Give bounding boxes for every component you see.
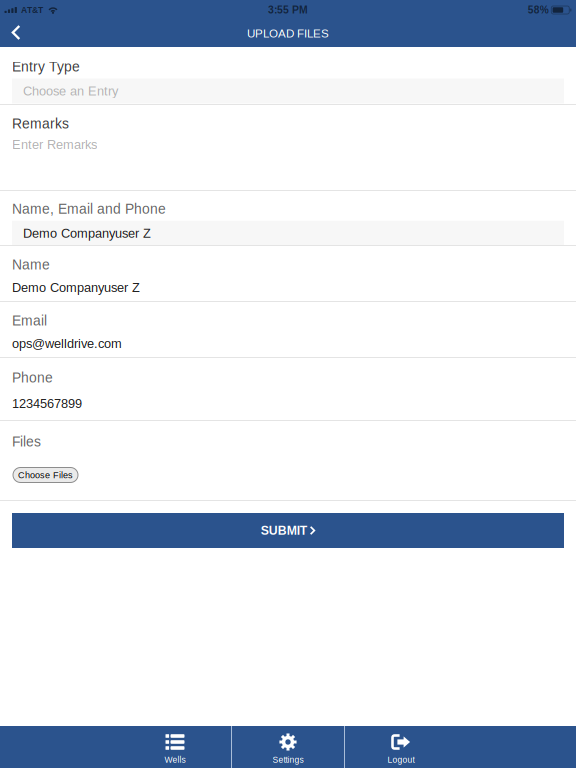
staticText: 3:55 PM <box>268 4 308 16</box>
button[interactable]: Choose an Entry <box>12 78 564 103</box>
staticText: SUBMIT <box>261 524 307 537</box>
staticText: Logout <box>387 755 414 764</box>
staticText: Demo Companyuser Z <box>12 280 140 295</box>
staticText: Email <box>12 313 47 328</box>
button[interactable]: Wells <box>119 726 231 768</box>
staticText: 1234567899 <box>12 396 82 411</box>
button[interactable]: Demo Companyuser Z <box>12 221 564 246</box>
staticText: 58% <box>528 4 549 16</box>
button[interactable]: Choose Files <box>13 467 78 482</box>
staticText: Enter Remarks <box>12 137 97 152</box>
staticText: Demo Companyuser Z <box>23 226 151 240</box>
staticText: Name <box>12 257 50 272</box>
staticText: Files <box>12 434 41 449</box>
staticText: Wells <box>164 755 185 764</box>
staticText: Choose Files <box>18 470 73 480</box>
staticText: Remarks <box>12 116 69 131</box>
staticText: ops@welldrive.com <box>12 336 122 351</box>
staticText: Choose an Entry <box>23 84 118 98</box>
staticText: Settings <box>272 755 303 764</box>
button[interactable]: SUBMIT <box>12 513 564 548</box>
button[interactable]: Settings <box>232 726 344 768</box>
staticText: AT&T <box>21 5 43 15</box>
staticText: Entry Type <box>12 59 80 74</box>
button[interactable]: Logout <box>345 726 457 768</box>
button[interactable]: Back <box>0 20 35 47</box>
staticText: Phone <box>12 370 53 385</box>
staticText: UPLOAD FILES <box>247 27 329 40</box>
staticText: Name, Email and Phone <box>12 201 166 217</box>
